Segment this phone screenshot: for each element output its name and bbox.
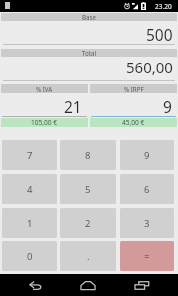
staticText: 105,00 € (31, 118, 58, 127)
staticText: 560,00 (126, 57, 173, 77)
button[interactable]: 0 (2, 241, 57, 271)
staticText: 9 (144, 149, 150, 162)
staticText: % IRPF (124, 85, 144, 93)
staticText: 2 (85, 217, 91, 230)
staticText: Total (82, 49, 97, 57)
staticText: % IVA (36, 85, 53, 93)
button[interactable]: 6 (120, 174, 174, 204)
button[interactable]: Recent apps (119, 274, 164, 296)
button[interactable]: 4 (2, 174, 57, 204)
staticText: 0 (27, 250, 33, 263)
button[interactable]: 3 (120, 208, 174, 238)
button[interactable]: 9 (120, 140, 174, 170)
staticText: 21 (64, 96, 82, 117)
button[interactable]: Back (13, 274, 57, 296)
staticText: 500 (146, 24, 173, 45)
button[interactable]: 7 (2, 140, 57, 170)
staticText: 7 (27, 149, 33, 162)
staticText: 5 (85, 183, 91, 196)
button[interactable]: 5 (60, 174, 116, 204)
staticText: 9 (163, 96, 172, 117)
staticText: 4 (27, 183, 33, 196)
staticText: 45,00 € (122, 118, 145, 127)
staticText: 3 (144, 217, 150, 230)
button[interactable]: = (120, 241, 174, 271)
button[interactable]: 1 (2, 208, 57, 238)
staticText: 8 (85, 149, 91, 162)
staticText: . (87, 250, 90, 263)
staticText: 23.20 (155, 2, 172, 11)
staticText: = (144, 250, 150, 263)
button[interactable]: Home (66, 274, 110, 296)
staticText: 1 (27, 217, 33, 230)
button[interactable]: 2 (60, 208, 116, 238)
staticText: Base (82, 13, 96, 21)
button[interactable]: 8 (60, 140, 116, 170)
staticText: 6 (144, 183, 150, 196)
